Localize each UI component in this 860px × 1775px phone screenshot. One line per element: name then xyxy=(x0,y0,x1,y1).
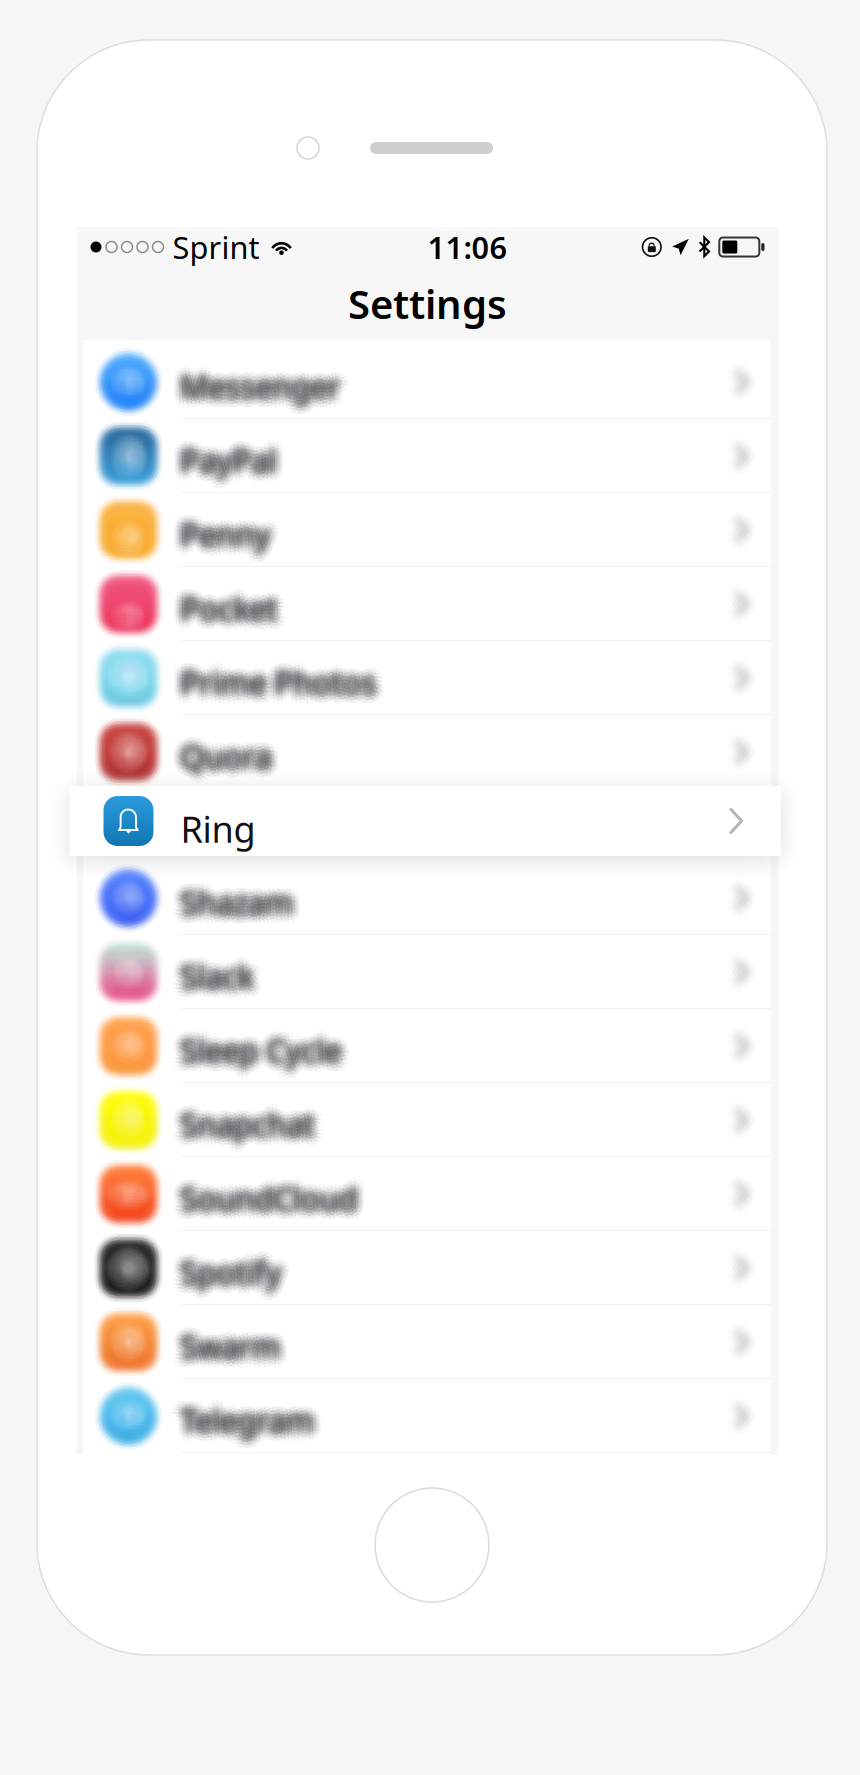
staticText: Messenger xyxy=(173,371,333,412)
staticText: Messenger xyxy=(176,370,336,411)
staticText: Prime Photos xyxy=(176,657,372,698)
button[interactable]: Snapchat xyxy=(76,1083,778,1157)
staticText: Telegram xyxy=(190,1399,324,1439)
staticText: Messenger xyxy=(182,363,342,404)
staticText: Telegram xyxy=(178,1399,312,1439)
staticText: Prime Photos xyxy=(177,663,373,704)
staticText: Shazam xyxy=(174,876,287,916)
staticText: PayPal xyxy=(184,449,280,489)
staticText: Slack xyxy=(176,960,249,1001)
staticText: SoundCloud xyxy=(182,1172,359,1213)
staticText: Messenger xyxy=(184,375,344,415)
staticText: SoundCloud xyxy=(179,1175,356,1216)
staticText: Sleep Cycle xyxy=(182,1027,343,1068)
staticText: Shazam xyxy=(185,878,298,918)
staticText: Penny xyxy=(177,505,267,546)
staticText: Sleep Cycle xyxy=(176,1034,337,1075)
button[interactable]: Pocket xyxy=(76,567,778,641)
staticText: Telegram xyxy=(184,1409,318,1449)
button[interactable]: Quora xyxy=(76,715,778,789)
staticText: Pocket xyxy=(181,579,278,619)
staticText: Shazam xyxy=(177,873,290,914)
staticText: Prime Photos xyxy=(174,656,370,696)
staticText: Shazam xyxy=(182,888,295,929)
staticText: Snapchat xyxy=(176,1112,310,1153)
staticText: Snapchat xyxy=(179,1110,313,1151)
staticText: Penny xyxy=(181,505,271,545)
button[interactable]: Telegram xyxy=(76,1379,778,1453)
staticText: Slack xyxy=(187,962,260,1003)
staticText: Swarm xyxy=(185,1330,285,1371)
staticText: PayPal xyxy=(183,439,279,479)
staticText: SoundCloud xyxy=(171,1179,348,1220)
staticText: Swarm xyxy=(185,1322,285,1362)
staticText: PayPal xyxy=(179,437,275,478)
staticText: Messenger xyxy=(185,362,345,402)
staticText: Sleep Cycle xyxy=(190,1029,351,1069)
staticText: Telegram xyxy=(176,1408,310,1449)
staticText: Penny xyxy=(179,520,269,561)
staticText: Slack xyxy=(184,965,257,1005)
staticText: Shazam xyxy=(182,879,295,920)
staticText: Spotify xyxy=(183,1253,284,1294)
staticText: Penny xyxy=(179,511,269,552)
staticText: Snapchat xyxy=(174,1105,308,1146)
staticText: PayPal xyxy=(180,440,276,481)
button[interactable]: Swarm xyxy=(76,1305,778,1379)
staticText: Slack xyxy=(189,959,262,999)
staticText: Pocket xyxy=(179,594,276,635)
staticText: Snapchat xyxy=(189,1107,323,1147)
button[interactable]: Sleep Cycle xyxy=(76,1009,778,1083)
staticText: Penny xyxy=(171,515,261,556)
staticText: Sleep Cycle xyxy=(174,1024,335,1064)
staticText: Shazam xyxy=(180,882,293,923)
staticText: Quora xyxy=(181,727,272,767)
button[interactable]: PayPal xyxy=(76,419,778,493)
staticText: Swarm xyxy=(184,1335,284,1375)
staticText: Slack xyxy=(182,953,255,994)
staticText: Snapchat xyxy=(179,1107,313,1148)
staticText: Sleep Cycle xyxy=(182,1024,343,1065)
staticText: Penny xyxy=(174,512,264,553)
staticText: Telegram xyxy=(177,1391,311,1432)
staticText: PayPal xyxy=(177,431,273,472)
staticText: Telegram xyxy=(176,1395,310,1436)
staticText: Slack xyxy=(185,960,258,1001)
staticText: Pocket xyxy=(189,591,286,631)
button[interactable]: Spotify xyxy=(76,1231,778,1305)
staticText: SoundCloud xyxy=(188,1173,365,1213)
staticText: Penny xyxy=(176,518,266,559)
staticText: Spotify xyxy=(182,1258,283,1299)
staticText: Prime Photos xyxy=(188,657,384,697)
staticText: Shazam xyxy=(179,888,292,929)
staticText: Pocket xyxy=(190,587,287,627)
button[interactable]: Prime Photos xyxy=(76,641,778,715)
staticText: Snapchat xyxy=(179,1101,313,1142)
button[interactable]: SoundCloud xyxy=(76,1157,778,1231)
button[interactable]: Ring xyxy=(69,786,780,856)
staticText: Penny xyxy=(187,512,277,553)
staticText: Messenger xyxy=(187,364,347,405)
staticText: Shazam xyxy=(182,876,295,917)
button[interactable]: Slack xyxy=(76,935,778,1009)
staticText: Sleep Cycle xyxy=(184,1039,345,1079)
staticText: Prime Photos xyxy=(178,661,374,701)
staticText: Prime Photos xyxy=(185,658,381,698)
staticText: Slack xyxy=(187,954,260,995)
staticText: Shazam xyxy=(179,885,292,926)
button[interactable]: Messenger xyxy=(76,345,778,419)
staticText: Pocket xyxy=(177,589,274,630)
staticText: Snapchat xyxy=(180,1113,314,1154)
staticText: PayPal xyxy=(187,438,283,479)
staticText: Pocket xyxy=(185,592,282,633)
staticText: Snapchat xyxy=(177,1095,311,1136)
staticText: Sleep Cycle xyxy=(174,1031,335,1072)
button[interactable]: Shazam xyxy=(76,861,778,935)
staticText: Messenger xyxy=(174,360,334,400)
staticText: Quora xyxy=(172,733,263,774)
staticText: PayPal xyxy=(174,441,270,482)
staticText: Spotify xyxy=(178,1251,279,1291)
staticText: Spotify xyxy=(174,1246,275,1286)
button[interactable]: Penny xyxy=(76,493,778,567)
staticText: Telegram xyxy=(179,1403,313,1444)
